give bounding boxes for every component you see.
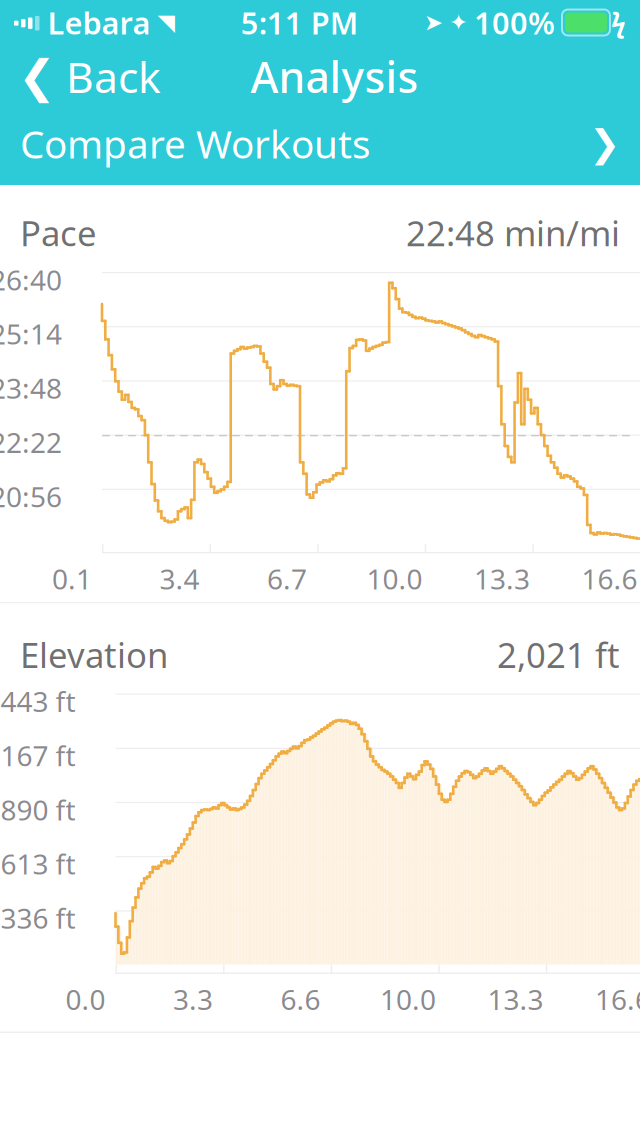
staticText: 1,613 ft <box>0 845 75 882</box>
staticText: 2,167 ft <box>0 737 75 774</box>
staticText: 5:11 PM <box>241 2 358 43</box>
staticText: 10.0 <box>380 980 436 1018</box>
staticText: 2,021 ft <box>497 631 620 677</box>
staticText: ➤ <box>424 10 443 35</box>
staticText: 10.0 <box>366 560 422 597</box>
staticText: 3.4 <box>159 560 199 597</box>
staticText: 2,443 ft <box>0 682 75 720</box>
staticText: 6.7 <box>267 560 307 597</box>
staticText: 23:48 <box>0 369 62 406</box>
staticText: 22:48 min/mi <box>406 210 620 256</box>
staticText: Elevation <box>20 631 168 677</box>
staticText: Analysis <box>250 48 418 105</box>
staticText: 20:56 <box>0 478 62 515</box>
staticText: 0.0 <box>65 980 105 1018</box>
staticText: ✦ <box>449 10 468 35</box>
staticText: 16.6 <box>581 560 637 597</box>
staticText: 3.3 <box>173 980 213 1018</box>
staticText: 100% <box>474 2 555 43</box>
staticText: 13.3 <box>474 560 530 597</box>
staticText: ◥ <box>157 10 174 35</box>
staticText: 1,336 ft <box>0 899 75 936</box>
staticText: 26:40 <box>0 261 62 298</box>
staticText: ϟ <box>611 5 626 40</box>
staticText: 16.6 <box>595 980 640 1018</box>
staticText: ❯ <box>589 122 620 165</box>
staticText: 25:14 <box>0 315 62 352</box>
staticText: Pace <box>20 210 97 256</box>
staticText: Back <box>66 48 161 105</box>
staticText: 13.3 <box>487 980 543 1018</box>
staticText: ❮ <box>18 51 56 102</box>
staticText: Compare Workouts <box>20 118 371 169</box>
staticText: Lebara <box>47 2 150 43</box>
staticText: 6.6 <box>280 980 320 1018</box>
button[interactable]: Compare Workouts <box>0 104 640 182</box>
staticText: 0.1 <box>52 560 92 597</box>
button[interactable]: ❮ <box>0 48 179 104</box>
staticText: 1,890 ft <box>0 791 75 828</box>
staticText: 22:22 <box>0 423 62 461</box>
